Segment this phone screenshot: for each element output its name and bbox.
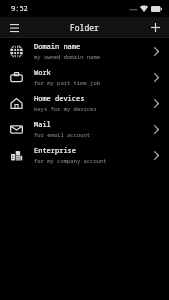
staticText: for email account (34, 131, 91, 138)
button[interactable]: Domain name (0, 38, 169, 64)
button[interactable]: Add (146, 18, 164, 36)
staticText: 9:52 (11, 4, 28, 14)
staticText: Domain name (34, 42, 81, 52)
staticText: Enterprise (34, 146, 76, 156)
staticText: Mail (34, 120, 51, 130)
button[interactable]: Work (0, 64, 169, 90)
staticText: Work (34, 68, 51, 78)
button[interactable]: Home devices (0, 90, 169, 116)
staticText: keys for my devices (34, 105, 97, 112)
staticText: my owned domain name (34, 53, 101, 60)
button[interactable]: Open navigation menu (5, 18, 23, 36)
staticText: for my company account (34, 157, 107, 164)
button[interactable]: Enterprise (0, 142, 169, 168)
staticText: Home devices (34, 94, 85, 104)
staticText: for my part time job (34, 79, 101, 86)
staticText: Folder (70, 22, 99, 33)
button[interactable]: Mail (0, 116, 169, 142)
